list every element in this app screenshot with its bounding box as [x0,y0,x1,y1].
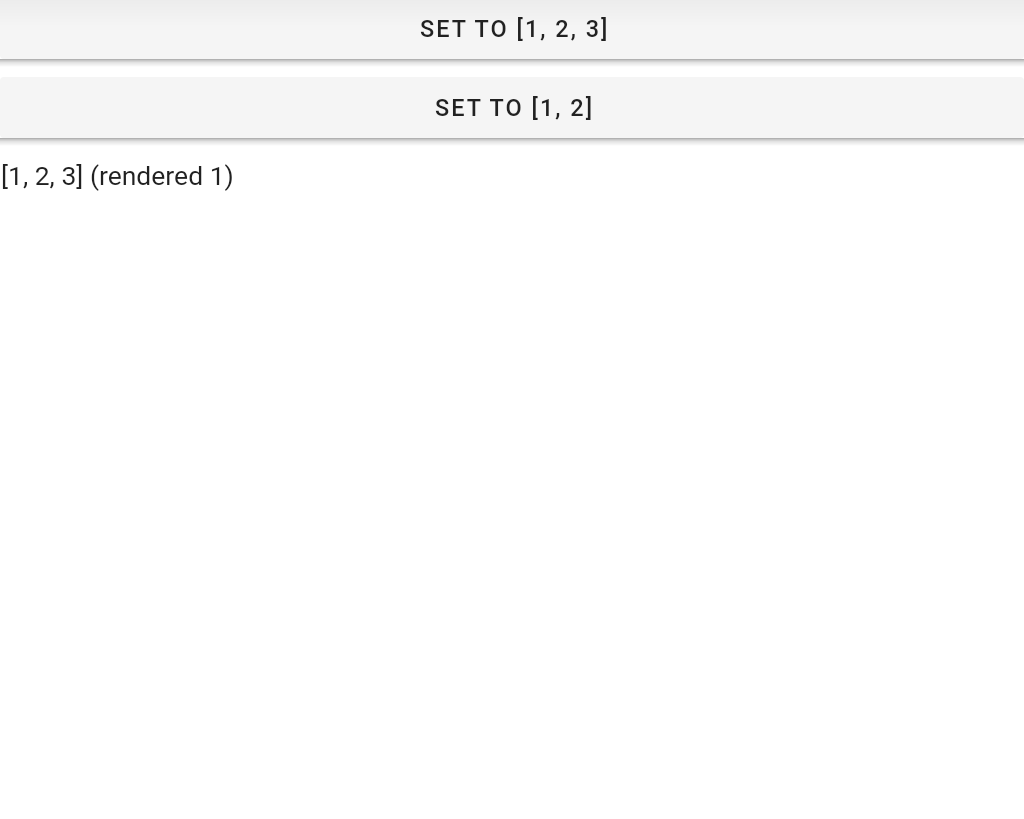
button[interactable]: SET TO [1, 2] [0,77,1024,138]
staticText: SET TO [1, 2, 3] [420,15,610,43]
button[interactable]: SET TO [1, 2, 3] [0,0,1024,59]
staticText: SET TO [1, 2] [435,94,595,122]
staticText: [1, 2, 3] (rendered 1) [1,160,234,191]
